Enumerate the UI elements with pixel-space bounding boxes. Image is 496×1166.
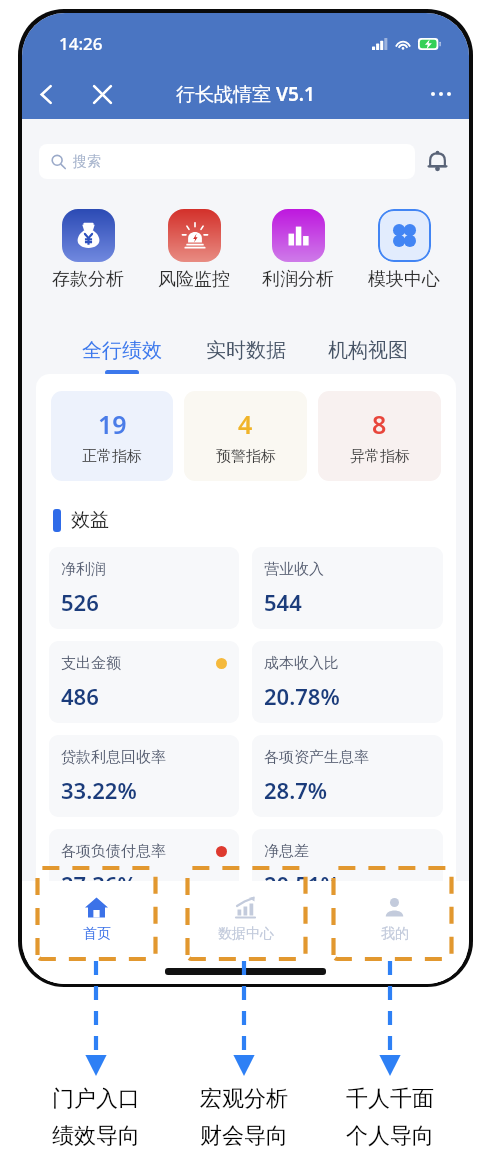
button[interactable]: More options (419, 72, 463, 116)
staticText: 搜索 (73, 153, 101, 171)
staticText: 数据中心 (218, 925, 274, 943)
button[interactable]: 8 (318, 391, 441, 481)
button[interactable]: 利润分析 (248, 209, 348, 291)
button[interactable]: Close (80, 72, 124, 116)
button[interactable]: 贷款利息回收率 (49, 735, 239, 817)
button[interactable]: Back (24, 72, 68, 116)
button[interactable]: 首页 (22, 887, 171, 943)
staticText: 门户入口 (52, 1085, 140, 1113)
staticText: 利润分析 (262, 268, 334, 291)
staticText: 544 (264, 587, 302, 617)
button[interactable]: 我的 (320, 887, 469, 943)
staticText: 营业收入 (264, 560, 324, 579)
staticText: 异常指标 (350, 447, 410, 466)
button[interactable]: Notifications (417, 141, 457, 181)
staticText: 风险监控 (158, 268, 230, 291)
button[interactable]: 各项资产生息率 (252, 735, 443, 817)
button[interactable]: 19 (51, 391, 173, 481)
staticText: 各项负债付息率 (61, 842, 166, 861)
staticText: 个人导向 (346, 1122, 434, 1150)
staticText: 财会导向 (200, 1122, 288, 1150)
staticText: 净利润 (61, 560, 106, 579)
staticText: 支出金额 (61, 654, 121, 673)
staticText: 19 (98, 407, 127, 441)
staticText: 27.36% (61, 869, 137, 899)
staticText: 宏观分析 (200, 1085, 288, 1113)
button[interactable]: 机构视图 (320, 338, 416, 370)
staticText: 20.78% (264, 681, 340, 711)
staticText: 526 (61, 587, 99, 617)
staticText: 贷款利息回收率 (61, 748, 166, 767)
button[interactable]: 净利润 (49, 547, 239, 629)
button[interactable]: 全行绩效 (74, 338, 170, 375)
staticText: 实时数据 (206, 338, 286, 363)
staticText: 存款分析 (52, 268, 124, 291)
staticText: 33.22% (61, 775, 137, 805)
button[interactable]: 实时数据 (198, 338, 294, 370)
staticText: 效益 (71, 508, 109, 532)
staticText: 正常指标 (82, 447, 142, 466)
staticText: 20.51% (264, 869, 340, 899)
staticText: 首页 (83, 925, 111, 943)
button[interactable]: 净息差 (252, 829, 443, 911)
staticText: 28.7% (264, 775, 328, 805)
staticText: 486 (61, 681, 99, 711)
button[interactable]: 支出金额 (49, 641, 239, 723)
staticText: 成本收入比 (264, 654, 339, 673)
staticText: 各项资产生息率 (264, 748, 369, 767)
staticText: 净息差 (264, 842, 309, 861)
staticText: 我的 (381, 925, 409, 943)
button[interactable]: 模块中心 (354, 209, 454, 291)
staticText: 千人千面 (346, 1085, 434, 1113)
button[interactable]: 各项负债付息率 (49, 829, 239, 911)
staticText: 行长战情室 V5.1 (176, 81, 315, 107)
staticText: 模块中心 (368, 268, 440, 291)
staticText: 4 (238, 407, 253, 441)
staticText: 预警指标 (216, 447, 276, 466)
button[interactable]: 4 (184, 391, 307, 481)
button[interactable]: 搜索 (39, 144, 415, 179)
button[interactable]: 数据中心 (171, 887, 320, 943)
button[interactable]: 营业收入 (252, 547, 443, 629)
button[interactable]: 成本收入比 (252, 641, 443, 723)
button[interactable]: 存款分析 (38, 209, 138, 291)
staticText: 绩效导向 (52, 1122, 140, 1150)
button[interactable]: 风险监控 (144, 209, 244, 291)
staticText: 全行绩效 (82, 338, 162, 363)
staticText: 8 (372, 407, 387, 441)
staticText: 机构视图 (328, 338, 408, 363)
staticText: 14:26 (59, 32, 103, 55)
